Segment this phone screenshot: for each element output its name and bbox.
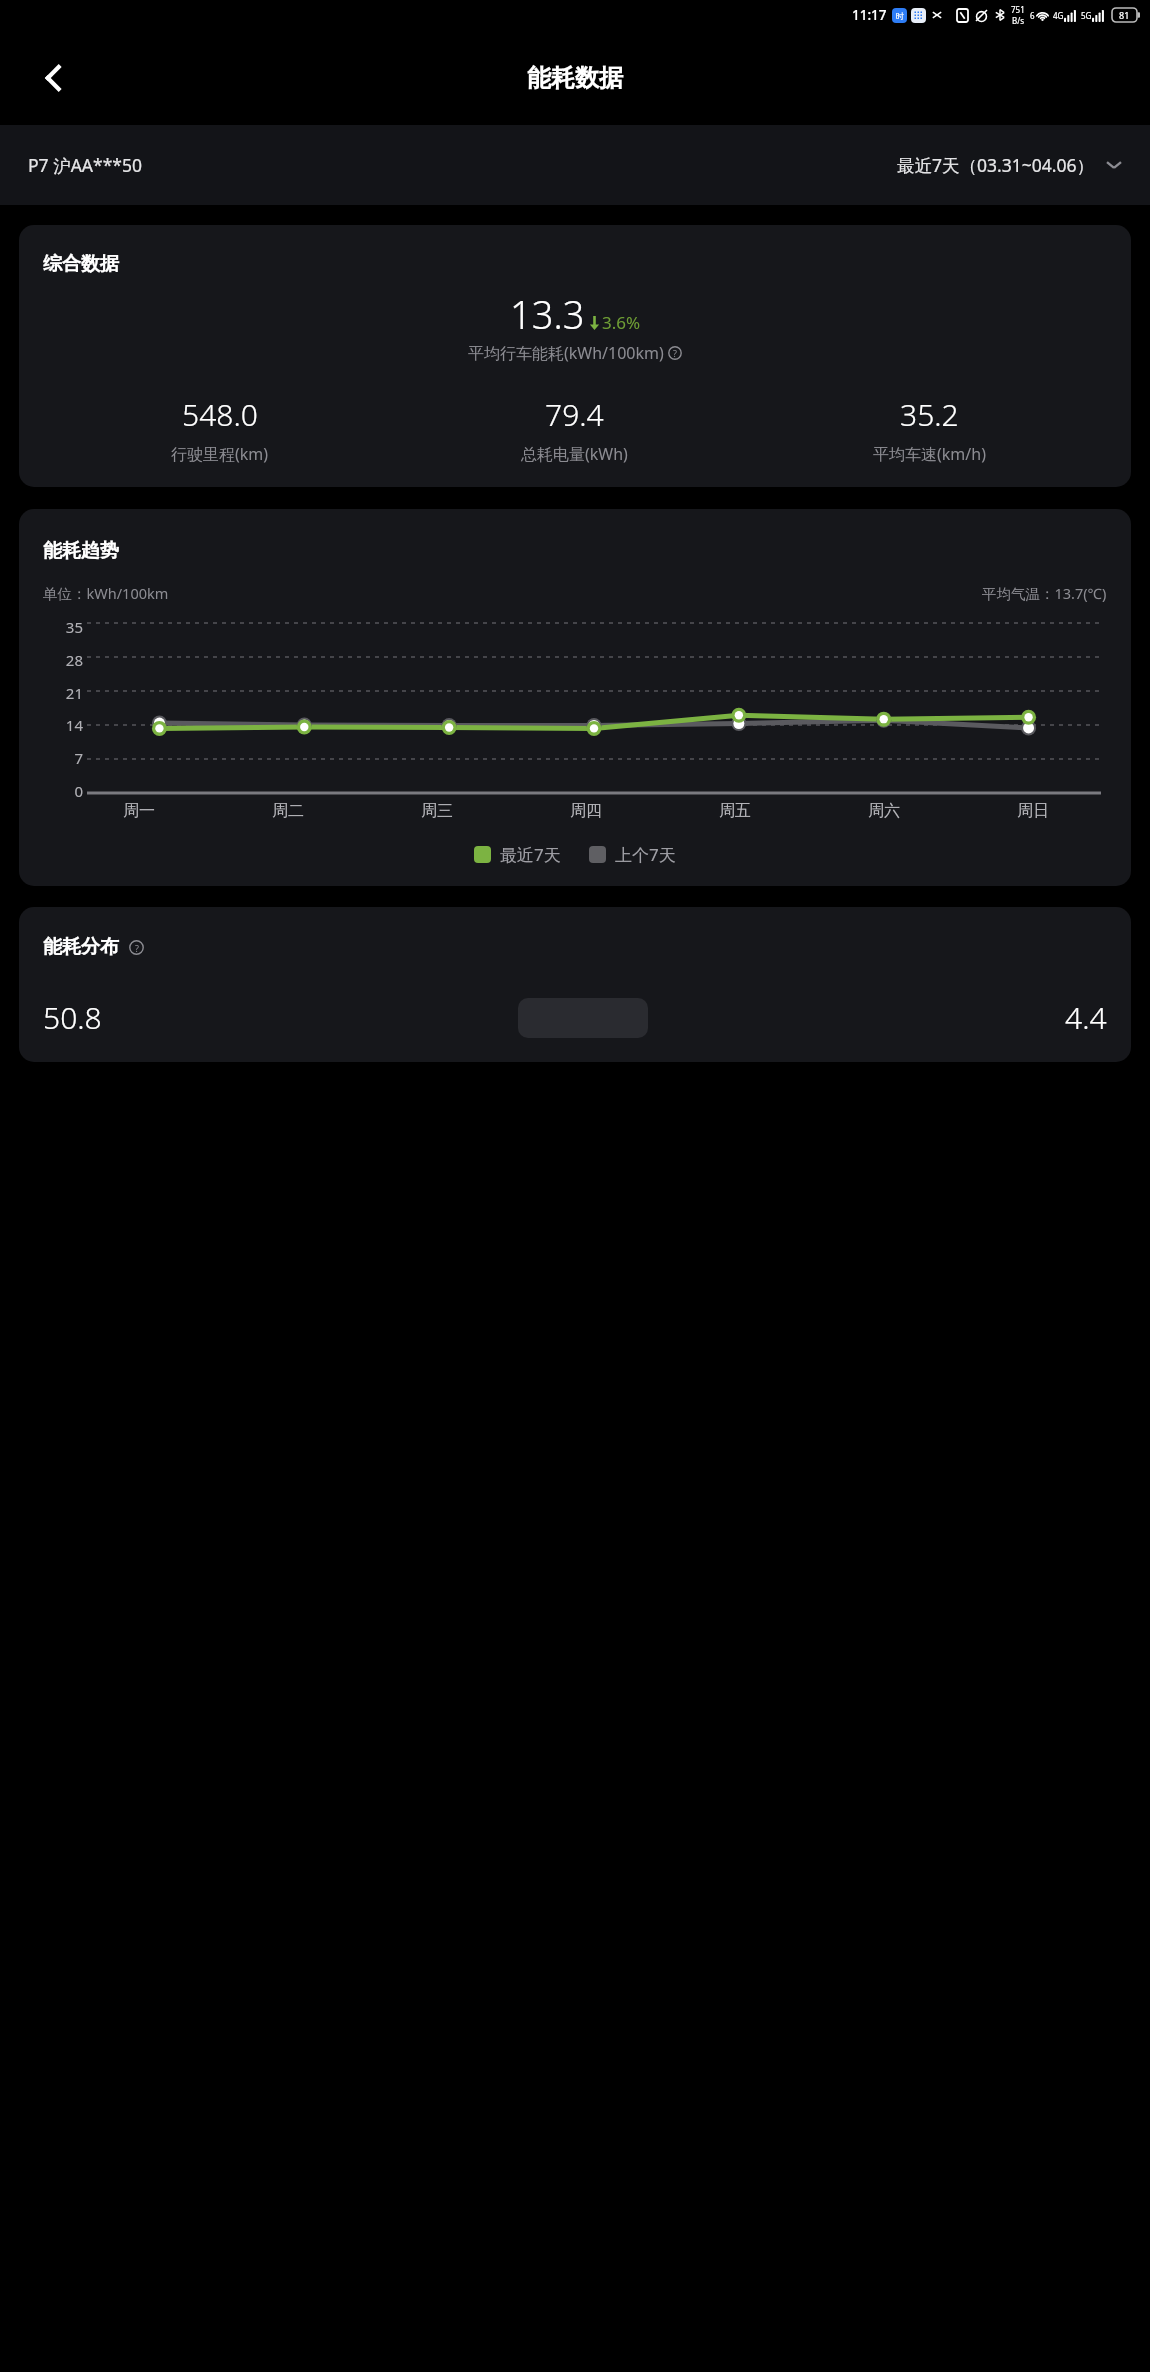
button[interactable]: 上个7天 bbox=[589, 843, 676, 866]
staticText: 周四 bbox=[570, 801, 602, 821]
staticText: 28 bbox=[65, 650, 83, 666]
button[interactable]: 能耗分布 bbox=[19, 907, 1131, 1062]
staticText: 周一 bbox=[123, 801, 155, 821]
staticText: 平均车速(km/h) bbox=[873, 443, 986, 465]
staticText: B/s bbox=[1012, 15, 1025, 26]
staticText: 5G bbox=[1081, 10, 1092, 21]
staticText: 周二 bbox=[272, 801, 304, 821]
staticText: 能耗数据 bbox=[527, 63, 623, 93]
staticText: 4.4 bbox=[1065, 997, 1107, 1038]
staticText: 最近7天（03.31~04.06） bbox=[897, 153, 1094, 177]
staticText: 11:17 bbox=[852, 6, 887, 24]
staticText: 35.2 bbox=[900, 394, 959, 435]
button[interactable]: 综合数据 bbox=[19, 225, 1131, 487]
staticText: 21 bbox=[65, 683, 83, 699]
button[interactable]: P7 沪AA***50 bbox=[28, 153, 142, 177]
staticText: 751 bbox=[1011, 4, 1025, 15]
staticText: 能耗分布 bbox=[43, 935, 119, 959]
staticText: 35 bbox=[65, 617, 83, 633]
staticText: ? bbox=[135, 942, 139, 954]
staticText: 548.0 bbox=[182, 394, 258, 435]
staticText: 时 bbox=[896, 11, 904, 21]
staticText: 周五 bbox=[719, 801, 751, 821]
staticText: 3.6% bbox=[602, 311, 641, 334]
staticText: 6 bbox=[1030, 10, 1035, 21]
staticText: 50.8 bbox=[43, 997, 102, 1038]
staticText: 行驶里程(km) bbox=[171, 443, 269, 465]
staticText: ? bbox=[673, 347, 677, 359]
staticText: 总耗电量(kWh) bbox=[521, 443, 628, 465]
staticText: 0 bbox=[74, 781, 83, 797]
staticText: 平均行车能耗(kWh/100km) bbox=[468, 342, 664, 364]
staticText: 4G bbox=[1053, 10, 1064, 21]
staticText: P7 沪AA***50 bbox=[28, 153, 142, 177]
staticText: 上个7天 bbox=[615, 843, 676, 866]
staticText: 14 bbox=[65, 715, 83, 731]
staticText: 79.4 bbox=[545, 394, 604, 435]
staticText: 周三 bbox=[421, 801, 453, 821]
button[interactable]: 最近7天（03.31~04.06） bbox=[897, 153, 1122, 177]
button[interactable]: 最近7天 bbox=[474, 843, 561, 866]
staticText: 13.3 bbox=[510, 288, 585, 340]
button[interactable]: Back bbox=[26, 50, 82, 106]
staticText: 81 bbox=[1119, 9, 1130, 21]
staticText: 最近7天 bbox=[500, 843, 561, 866]
staticText: 周六 bbox=[868, 801, 900, 821]
staticText: 7 bbox=[74, 748, 83, 764]
button[interactable]: 能耗趋势 bbox=[19, 509, 1131, 886]
staticText: 单位：kWh/100km bbox=[43, 583, 169, 603]
staticText: 平均气温：13.7(℃) bbox=[982, 583, 1107, 603]
staticText: 能耗趋势 bbox=[43, 539, 119, 563]
staticText: 综合数据 bbox=[43, 252, 119, 276]
staticText: 周日 bbox=[1017, 801, 1049, 821]
